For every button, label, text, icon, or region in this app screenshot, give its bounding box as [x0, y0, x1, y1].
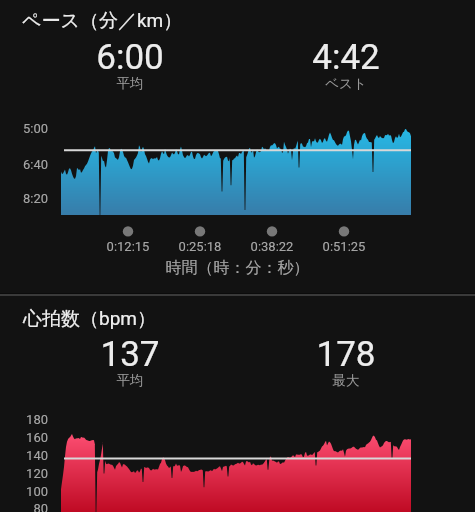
- staticText: 平均: [22, 75, 238, 92]
- staticText: 120: [17, 466, 48, 481]
- staticText: 100: [17, 484, 48, 499]
- staticText: ペース（分／km）: [22, 9, 183, 33]
- staticText: 178: [238, 334, 454, 375]
- button[interactable]: 178: [238, 334, 454, 392]
- staticText: 140: [17, 448, 48, 463]
- staticText: 平均: [22, 372, 238, 389]
- staticText: 137: [22, 334, 238, 375]
- button[interactable]: 137: [22, 334, 238, 392]
- staticText: ベスト: [238, 75, 454, 92]
- staticText: 0:38:22: [232, 239, 312, 254]
- staticText: 0:25:18: [160, 239, 240, 254]
- staticText: 時間（時：分：秒）: [0, 258, 475, 278]
- staticText: 0:12:15: [88, 239, 168, 254]
- staticText: 4:42: [238, 37, 454, 78]
- staticText: 心拍数（bpm）: [23, 307, 156, 331]
- staticText: 最大: [238, 372, 454, 389]
- staticText: 160: [17, 430, 48, 445]
- staticText: 80: [17, 501, 48, 512]
- staticText: 6:40: [23, 157, 49, 172]
- staticText: 8:20: [23, 191, 49, 206]
- button[interactable]: 6:00: [22, 37, 238, 95]
- staticText: 0:51:25: [304, 239, 384, 254]
- staticText: 6:00: [22, 37, 238, 78]
- button[interactable]: 4:42: [238, 37, 454, 95]
- staticText: 180: [17, 412, 48, 427]
- staticText: 5:00: [23, 121, 49, 136]
